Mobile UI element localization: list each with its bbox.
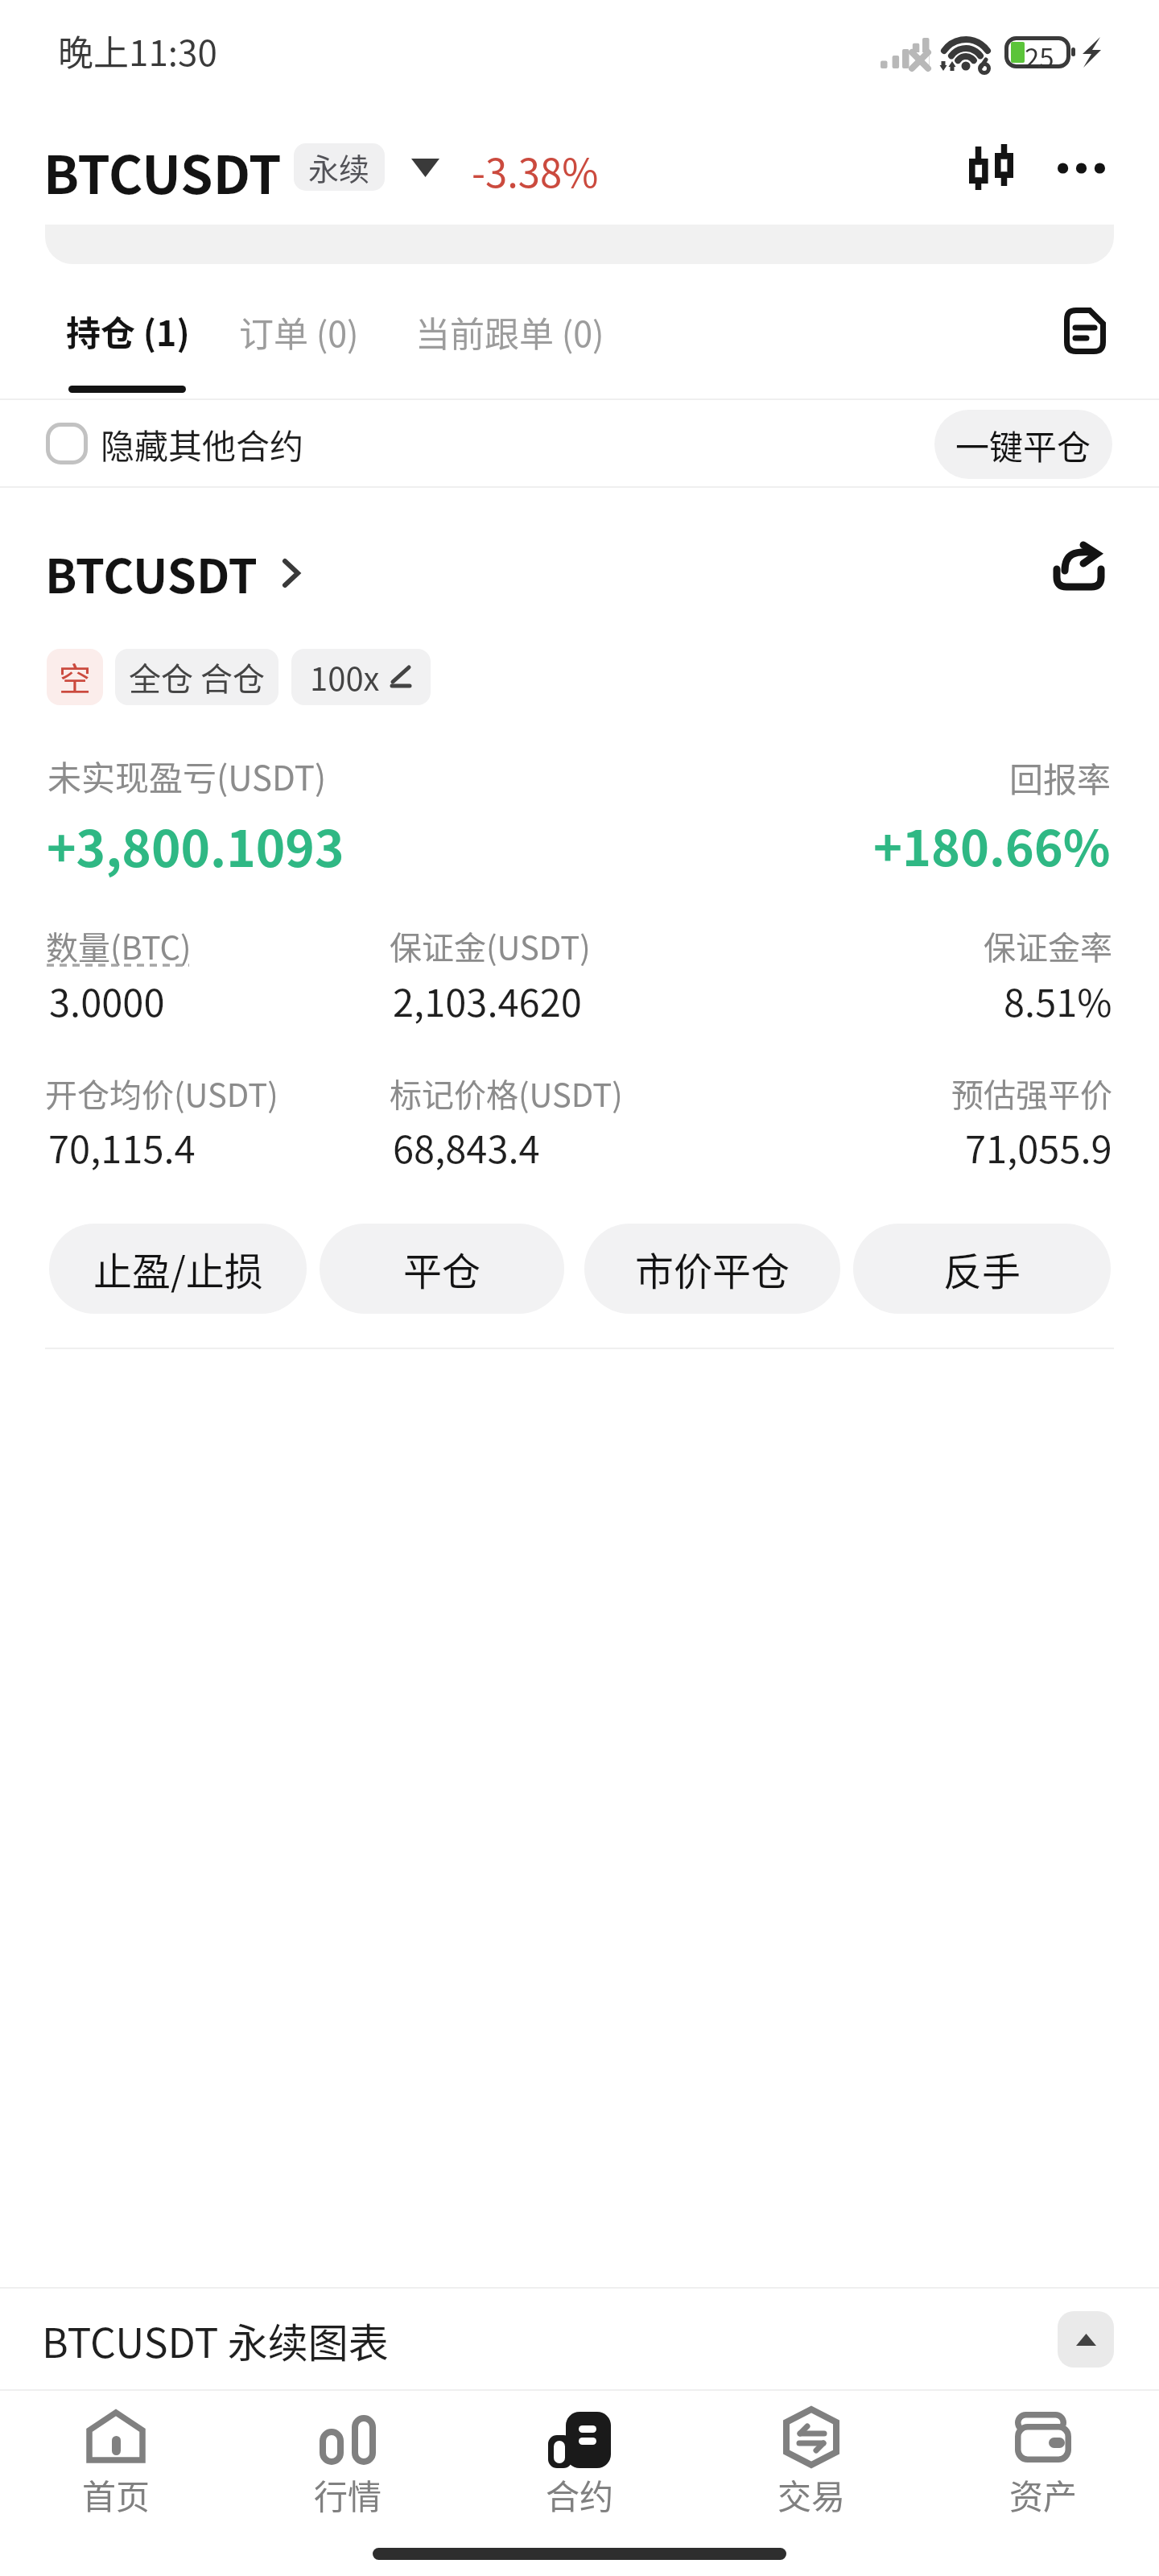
staticText: 未实现盈亏(USDT)	[47, 751, 327, 800]
staticText: 平仓	[403, 1241, 481, 1297]
staticText: 25	[1025, 37, 1054, 76]
staticText: 开仓均价(USDT)	[45, 1070, 278, 1117]
staticText: -3.38%	[472, 142, 599, 199]
staticText: 预估强平价	[951, 1070, 1112, 1117]
button[interactable]: 资产	[927, 2392, 1159, 2536]
button[interactable]: 订单记录	[1046, 292, 1124, 369]
staticText: 100x	[310, 654, 380, 700]
button[interactable]: 行情	[232, 2392, 464, 2536]
staticText: 交易	[777, 2470, 846, 2519]
button[interactable]: 隐藏其他合约	[29, 400, 319, 487]
staticText: 68,843.4	[393, 1119, 540, 1174]
staticText: 订单 (0)	[239, 307, 359, 357]
staticText: 全仓 合仓	[129, 654, 265, 700]
staticText: +3,800.1093	[47, 809, 344, 881]
staticText: 永续	[308, 145, 370, 189]
staticText: 当前跟单 (0)	[415, 307, 604, 357]
button[interactable]: 止盈/止损	[49, 1224, 307, 1314]
staticText: 71,055.9	[965, 1119, 1112, 1174]
button[interactable]: 持仓 (1)	[66, 306, 190, 356]
button[interactable]: 分享	[1041, 529, 1116, 603]
staticText: 空	[59, 654, 91, 700]
button[interactable]: 更多	[1042, 130, 1120, 207]
staticText: 首页	[82, 2470, 151, 2519]
staticText: BTCUSDT 永续图表	[42, 2311, 389, 2369]
staticText: 一键平仓	[955, 420, 1091, 469]
button[interactable]: 首页	[0, 2392, 232, 2536]
staticText: 保证金率	[984, 923, 1112, 969]
staticText: 2,103.4620	[393, 972, 582, 1027]
button[interactable]: 市价平仓	[584, 1224, 840, 1314]
staticText: 回报率	[1009, 753, 1112, 802]
staticText: 持仓 (1)	[66, 306, 190, 356]
staticText: 保证金(USDT)	[390, 923, 591, 969]
staticText: 反手	[943, 1241, 1021, 1297]
staticText: 市价平仓	[635, 1241, 790, 1297]
staticText: 晚上11:30	[58, 25, 217, 76]
staticText: 3.0000	[49, 972, 165, 1027]
button[interactable]: 交易	[695, 2392, 927, 2536]
staticText: 数量(BTC)	[46, 923, 192, 969]
button[interactable]: 平仓	[320, 1224, 564, 1314]
staticText: 资产	[1009, 2470, 1078, 2519]
button[interactable]: 反手	[853, 1224, 1111, 1314]
staticText: 8.51%	[1004, 972, 1112, 1027]
staticText: +180.66%	[873, 809, 1111, 880]
staticText: 行情	[314, 2470, 382, 2519]
staticText: 标记价格(USDT)	[390, 1070, 623, 1117]
button[interactable]: K线图	[952, 130, 1029, 207]
staticText: 止盈/止损	[93, 1241, 263, 1297]
button[interactable]: 合约	[464, 2392, 695, 2536]
button[interactable]: 100x	[291, 649, 431, 705]
button[interactable]: 订单 (0)	[239, 307, 359, 357]
staticText: 合约	[546, 2470, 614, 2519]
staticText: BTCUSDT	[43, 134, 282, 209]
button[interactable]: 展开图表	[1058, 2311, 1114, 2368]
staticText: 70,115.4	[48, 1119, 196, 1174]
staticText: BTCUSDT	[45, 539, 258, 607]
button[interactable]: 一键平仓	[934, 410, 1112, 479]
button[interactable]: BTCUSDT	[45, 539, 303, 607]
staticText: 隐藏其他合约	[101, 419, 304, 469]
button[interactable]: 当前跟单 (0)	[415, 307, 604, 357]
